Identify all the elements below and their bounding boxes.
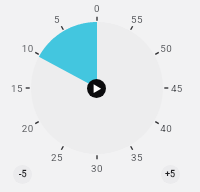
button[interactable]: -5: [13, 165, 32, 184]
staticText: +5: [165, 169, 176, 180]
button[interactable]: +5: [161, 165, 180, 184]
button[interactable]: Start timer: [87, 79, 106, 98]
staticText: -5: [19, 169, 27, 180]
